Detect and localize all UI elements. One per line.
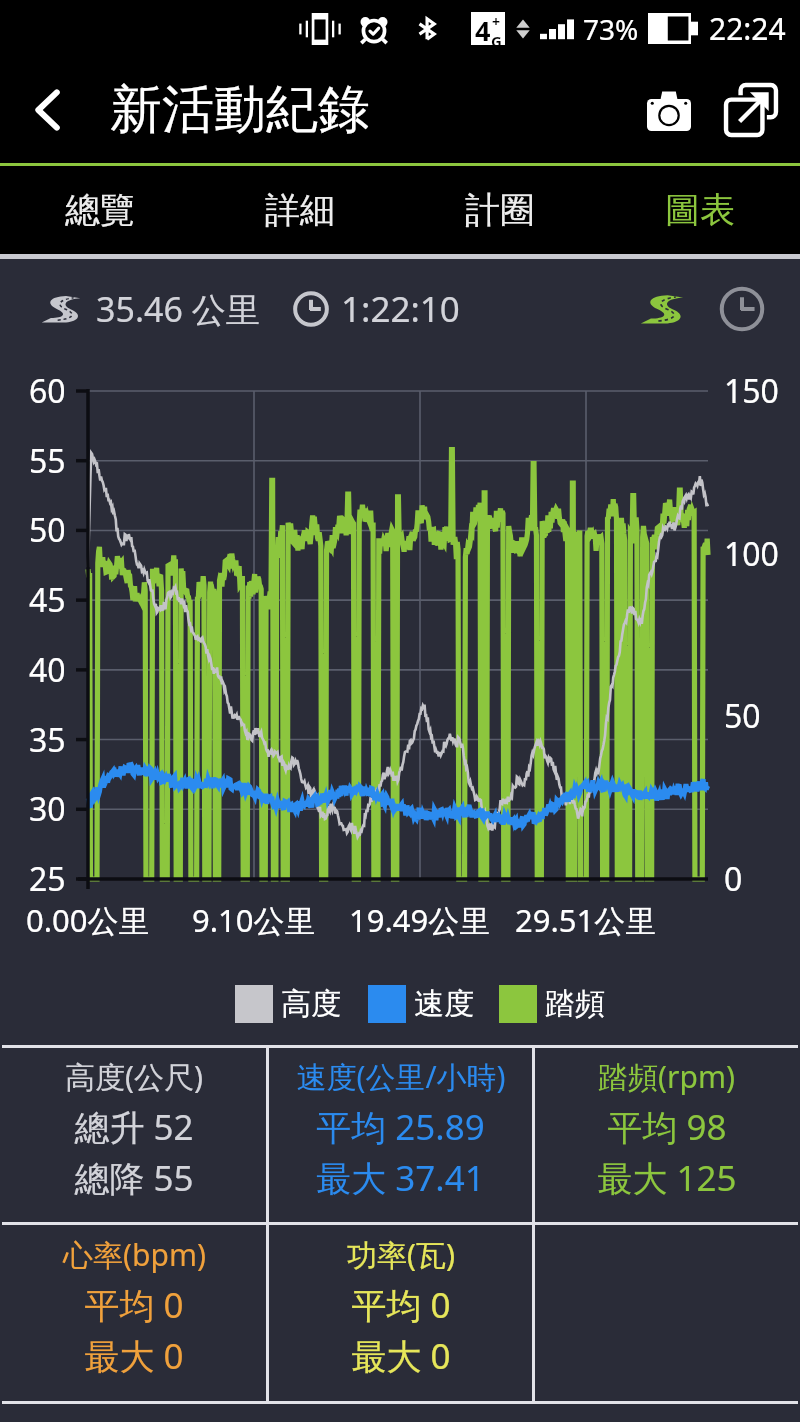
staticText: 最大 0 <box>351 1332 451 1380</box>
staticText: 高度(公尺) <box>65 1056 203 1097</box>
button[interactable]: Share <box>710 57 792 163</box>
staticText: 功率(瓦) <box>347 1234 455 1275</box>
button[interactable]: 高度(公尺) <box>2 1048 266 1222</box>
button[interactable]: Time chart <box>712 279 772 339</box>
button[interactable]: 詳細 <box>200 166 400 254</box>
staticText: 22:24 <box>709 8 786 49</box>
staticText: 踏頻 <box>545 985 605 1023</box>
staticText: 平均 98 <box>607 1103 727 1151</box>
button[interactable]: 功率(瓦) <box>269 1225 532 1401</box>
staticText: 最大 0 <box>84 1332 184 1380</box>
button[interactable]: 計圈 <box>400 166 600 254</box>
button[interactable]: 圖表 <box>600 166 800 254</box>
staticText: 詳細 <box>265 188 335 232</box>
button[interactable]: 踏頻 <box>499 985 605 1023</box>
staticText: 速度 <box>414 985 474 1023</box>
staticText: 總降 55 <box>74 1154 194 1202</box>
staticText: 最大 37.41 <box>316 1154 485 1202</box>
staticText: G <box>491 31 502 45</box>
staticText: 踏頻(rpm) <box>598 1056 735 1097</box>
staticText: 最大 125 <box>597 1154 737 1202</box>
button[interactable]: Back <box>0 58 96 162</box>
staticText: 高度 <box>281 985 341 1023</box>
staticText: 速度(公里/小時) <box>296 1056 506 1097</box>
button[interactable]: 踏頻(rpm) <box>535 1048 798 1222</box>
button[interactable]: 總覽 <box>0 166 200 254</box>
staticText: 73% <box>583 10 639 48</box>
staticText: 圖表 <box>665 188 735 232</box>
staticText: 總升 52 <box>74 1103 194 1151</box>
staticText: 計圈 <box>465 188 535 232</box>
staticText: 平均 0 <box>351 1281 451 1329</box>
staticText: 1:22:10 <box>341 285 460 333</box>
button[interactable]: 高度 <box>235 985 341 1023</box>
staticText: + <box>492 12 501 31</box>
button[interactable]: 速度(公里/小時) <box>269 1048 532 1222</box>
staticText: 心率(bpm) <box>63 1234 206 1275</box>
button[interactable]: Camera <box>628 57 710 163</box>
button[interactable]: 速度 <box>368 985 474 1023</box>
staticText: 新活動紀錄 <box>110 77 370 143</box>
button[interactable]: 心率(bpm) <box>2 1225 266 1401</box>
staticText: 總覽 <box>65 188 135 232</box>
staticText: 4 <box>475 12 491 45</box>
staticText: 平均 25.89 <box>316 1103 485 1151</box>
staticText: 35.46 公里 <box>96 286 260 332</box>
staticText: 平均 0 <box>84 1281 184 1329</box>
button[interactable]: Distance chart <box>632 279 692 339</box>
